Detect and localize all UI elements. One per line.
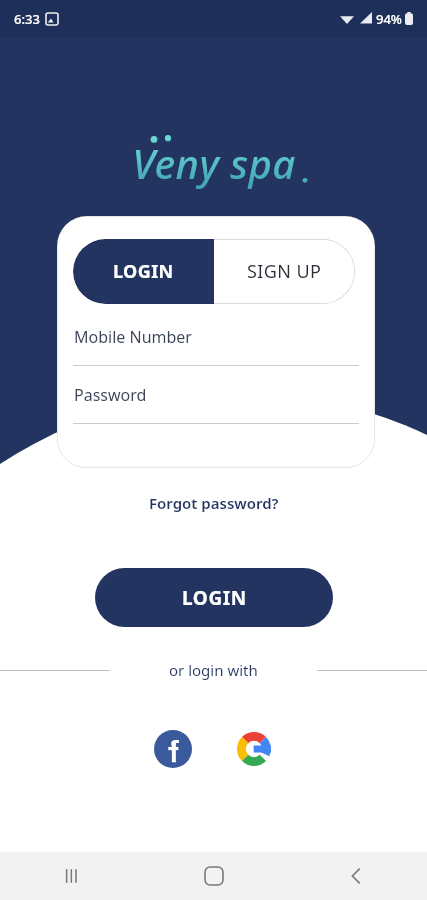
button[interactable]: Mobile Number [73, 326, 359, 366]
button[interactable]: LOGIN [73, 239, 214, 304]
staticText: Veny spa [132, 136, 296, 190]
staticText: LOGIN [182, 585, 247, 611]
button[interactable]: Password [73, 384, 359, 424]
staticText: Password [74, 384, 147, 406]
button[interactable]: Home [143, 852, 285, 900]
button[interactable]: SIGN UP [214, 239, 355, 304]
button[interactable]: Back [285, 852, 427, 900]
staticText: LOGIN [113, 259, 174, 284]
staticText: SIGN UP [247, 259, 322, 284]
button[interactable]: Recent apps [0, 852, 143, 900]
staticText: Forgot password? [149, 493, 279, 513]
staticText: 6:33 [14, 10, 40, 28]
button[interactable]: Forgot password? [141, 489, 287, 517]
staticText: or login with [169, 660, 258, 680]
button[interactable]: Sign in with Google [234, 729, 274, 769]
button[interactable]: LOGIN [95, 568, 333, 627]
staticText: 94% [376, 10, 402, 28]
staticText: Mobile Number [74, 326, 192, 348]
button[interactable]: Sign in with Facebook [153, 729, 193, 769]
